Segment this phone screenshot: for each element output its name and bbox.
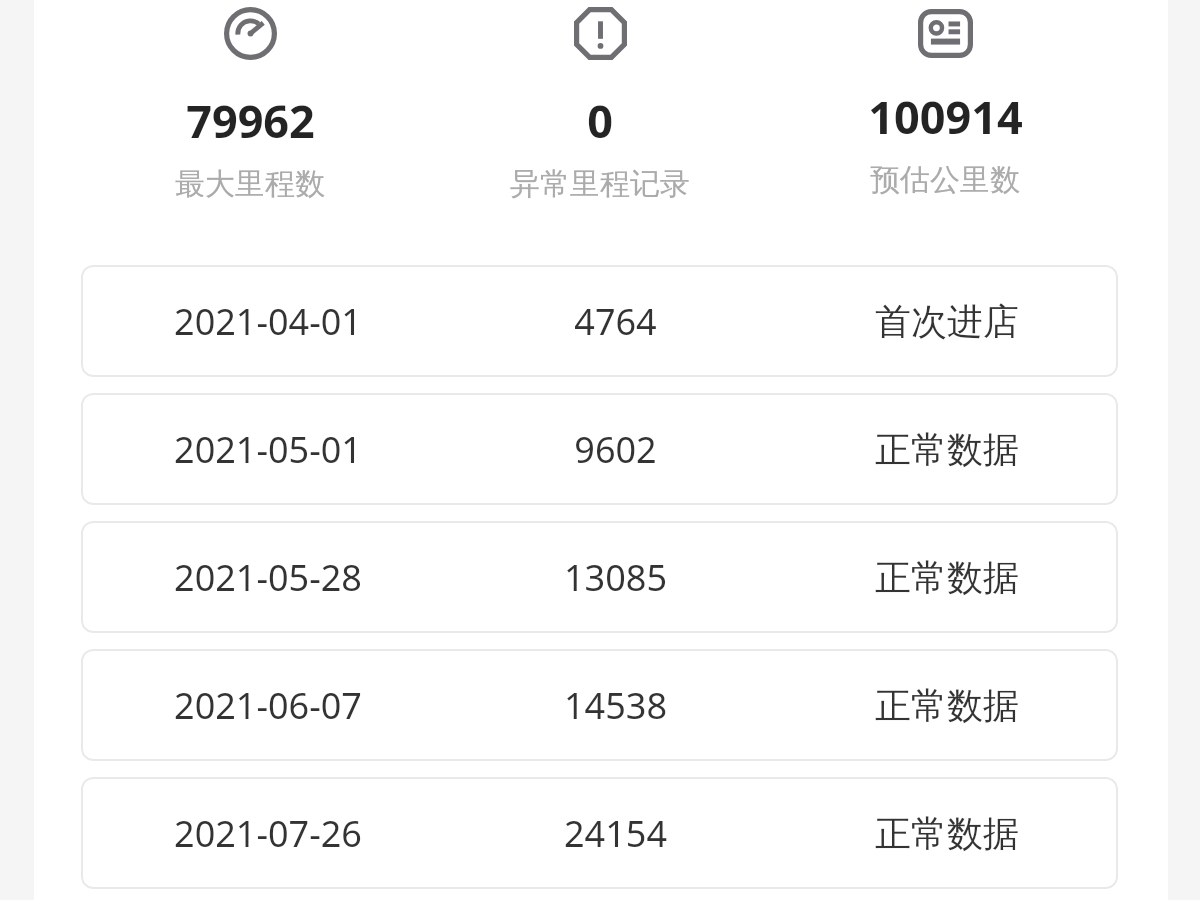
staticText: 9602	[574, 425, 657, 474]
staticText: 异常里程记录	[510, 165, 690, 203]
button[interactable]: 2021-07-26	[81, 777, 1118, 889]
staticText: 最大里程数	[175, 165, 325, 203]
staticText: 13085	[564, 553, 667, 602]
button[interactable]: 2021-04-01	[81, 265, 1118, 377]
staticText: 100914	[868, 86, 1023, 147]
button[interactable]: 2021-05-28	[81, 521, 1118, 633]
staticText: 正常数据	[875, 811, 1019, 856]
button[interactable]: 异常里程记录	[465, 7, 735, 203]
button[interactable]: 2021-05-01	[81, 393, 1118, 505]
button[interactable]: 最大里程数	[115, 7, 385, 203]
staticText: 正常数据	[875, 555, 1019, 600]
staticText: 2021-06-07	[174, 681, 362, 730]
staticText: 4764	[574, 297, 657, 346]
staticText: 首次进店	[875, 299, 1019, 344]
staticText: 14538	[564, 681, 667, 730]
staticText: 正常数据	[875, 683, 1019, 728]
staticText: 24154	[564, 809, 667, 858]
staticText: 2021-04-01	[174, 297, 362, 346]
staticText: 预估公里数	[870, 161, 1020, 199]
staticText: 2021-07-26	[174, 809, 362, 858]
staticText: 正常数据	[875, 427, 1019, 472]
button[interactable]: 2021-06-07	[81, 649, 1118, 761]
button[interactable]: 预估公里数	[810, 7, 1080, 199]
staticText: 0	[587, 90, 613, 151]
staticText: 79962	[186, 90, 315, 151]
staticText: 2021-05-01	[174, 425, 362, 474]
staticText: 2021-05-28	[174, 553, 362, 602]
